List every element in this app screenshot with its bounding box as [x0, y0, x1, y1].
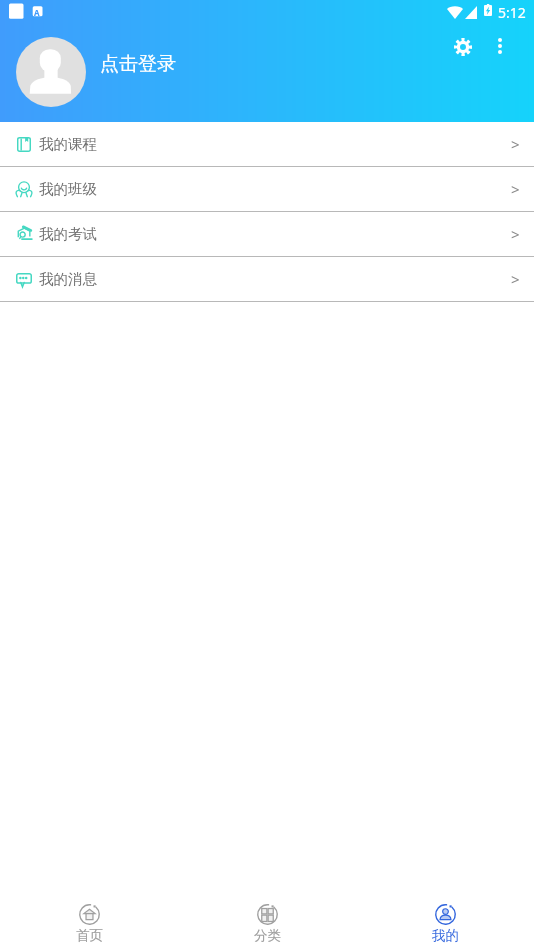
staticText: A [34, 7, 40, 18]
staticText: > [511, 224, 520, 244]
button[interactable]: 我的课程 [0, 122, 534, 166]
staticText: 我的课程 [39, 135, 97, 153]
staticText: 我的 [432, 927, 459, 944]
staticText: 我的班级 [39, 180, 97, 198]
staticText: 5:12 [498, 3, 526, 22]
button[interactable]: 首页 [0, 900, 178, 944]
button[interactable]: 我的 [356, 900, 534, 944]
staticText: 我的消息 [39, 270, 97, 288]
button[interactable] [16, 37, 86, 107]
button[interactable]: More options [482, 28, 518, 64]
staticText: 我的考试 [39, 225, 97, 243]
button[interactable]: 我的消息 [0, 257, 534, 301]
staticText: 点击登录 [100, 52, 176, 76]
staticText: 首页 [76, 927, 103, 944]
button[interactable]: 我的考试 [0, 212, 534, 256]
button[interactable]: 我的班级 [0, 167, 534, 211]
staticText: 分类 [254, 927, 281, 944]
staticText: > [511, 269, 520, 289]
button[interactable]: Settings [444, 28, 481, 65]
staticText: > [511, 134, 520, 154]
staticText: > [511, 179, 520, 199]
button[interactable]: 分类 [178, 900, 356, 944]
